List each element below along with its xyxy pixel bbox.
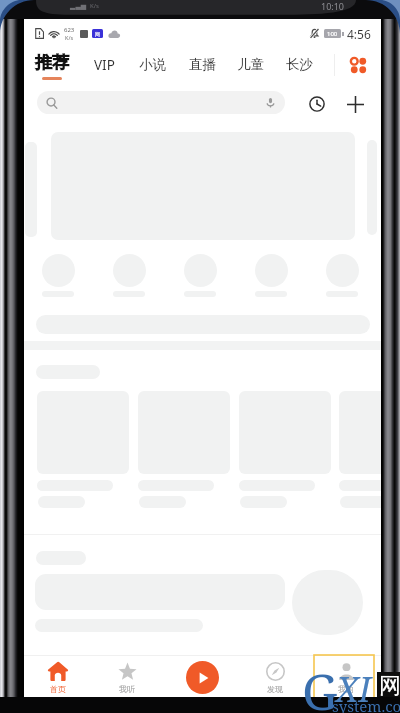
staticText: XI <box>336 666 371 712</box>
button[interactable] <box>172 252 228 298</box>
button[interactable]: Add <box>338 88 372 120</box>
staticText: 我的 <box>338 684 354 694</box>
button[interactable]: All categories <box>338 46 378 84</box>
button[interactable]: History <box>300 88 334 120</box>
staticText: G <box>302 657 338 713</box>
staticText: 小说 <box>139 56 166 73</box>
button[interactable]: 儿童 <box>231 46 269 84</box>
button[interactable]: 长沙 <box>280 46 318 84</box>
staticText: 100 <box>327 30 338 38</box>
staticText: K/s <box>65 34 74 41</box>
staticText: system.com <box>332 696 400 713</box>
staticText: K/s <box>90 2 99 10</box>
staticText: 直播 <box>189 56 216 73</box>
staticText: 首页 <box>50 684 66 694</box>
staticText: 623 <box>64 26 75 34</box>
staticText: 推荐 <box>35 52 69 73</box>
button[interactable] <box>339 391 400 474</box>
button[interactable]: 首页 <box>28 655 88 700</box>
button[interactable]: 我听 <box>97 655 157 700</box>
button[interactable] <box>243 252 299 298</box>
button[interactable] <box>314 252 370 298</box>
button[interactable] <box>37 91 285 114</box>
button[interactable]: Play <box>186 661 219 694</box>
staticText: ▂▃▅ <box>70 2 87 10</box>
staticText: 发现 <box>267 684 283 694</box>
button[interactable]: 推荐 <box>29 46 75 84</box>
staticText: 我听 <box>119 684 135 694</box>
staticText: 4:56 <box>347 26 371 42</box>
staticText: 10:10 <box>321 0 345 12</box>
staticText: VIP <box>94 56 115 74</box>
button[interactable]: 我的 <box>316 655 376 700</box>
staticText: 儿童 <box>237 56 264 73</box>
button[interactable] <box>30 252 86 298</box>
staticText: 长沙 <box>286 56 313 73</box>
staticText: 网 <box>95 31 100 37</box>
button[interactable] <box>101 252 157 298</box>
button[interactable]: 小说 <box>133 46 171 84</box>
button[interactable]: 发现 <box>245 655 305 700</box>
button[interactable]: 直播 <box>183 46 221 84</box>
staticText: 网 <box>379 672 400 697</box>
button[interactable]: VIP <box>85 46 123 84</box>
